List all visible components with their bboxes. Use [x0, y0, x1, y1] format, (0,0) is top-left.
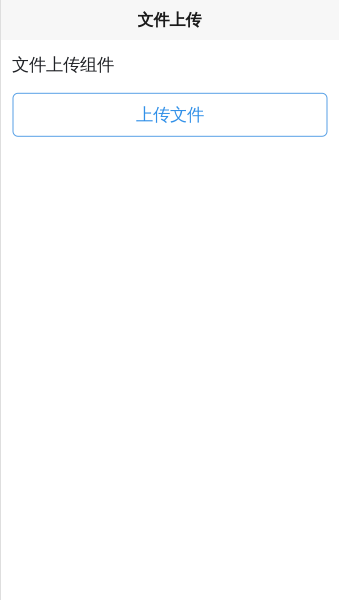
staticText: 上传文件	[136, 104, 204, 125]
staticText: 文件上传	[137, 10, 201, 30]
staticText: 文件上传组件	[12, 54, 114, 75]
button[interactable]: 上传文件	[13, 93, 327, 136]
